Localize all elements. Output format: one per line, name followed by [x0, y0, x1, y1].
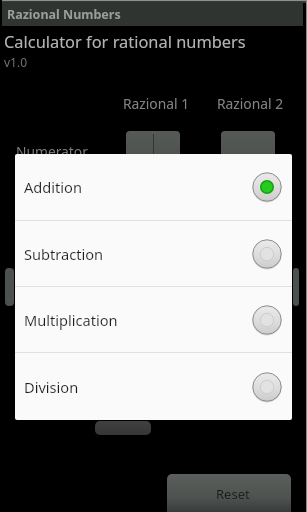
staticText: Calculator for rational numbers — [4, 30, 246, 52]
staticText: Razional 1 — [123, 94, 190, 113]
button[interactable]: Addition — [15, 154, 292, 220]
staticText: Addition — [24, 177, 252, 197]
button[interactable]: Division — [15, 353, 292, 420]
button[interactable]: Number field — [126, 131, 180, 159]
staticText: Reset — [216, 485, 250, 503]
staticText: v1.0 — [4, 54, 28, 70]
staticText: Razional Numbers — [7, 6, 121, 23]
staticText: Multiplication — [24, 310, 252, 330]
button[interactable]: Number field — [221, 131, 275, 159]
staticText: Subtraction — [24, 244, 252, 264]
button[interactable]: Subtraction — [15, 221, 292, 286]
button[interactable]: Reset — [167, 474, 291, 512]
staticText: Numerator — [16, 142, 88, 161]
button[interactable]: Multiplication — [15, 287, 292, 352]
button[interactable]: Calculate — [95, 421, 151, 435]
staticText: Division — [24, 377, 252, 397]
staticText: Razional 2 — [217, 94, 284, 113]
